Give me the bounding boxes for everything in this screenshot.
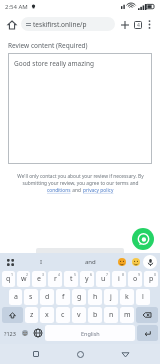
- staticText: submitting your review, you agree to our…: [22, 180, 139, 187]
- staticText: m: [124, 310, 131, 320]
- staticText: f: [62, 292, 65, 302]
- button[interactable]: Chat on WhatsApp: [132, 228, 154, 250]
- button[interactable]: Home: [5, 18, 18, 31]
- staticText: 5: [74, 272, 77, 277]
- staticText: g: [77, 292, 82, 302]
- staticText: 4: [137, 22, 140, 29]
- button[interactable]: q: [2, 271, 15, 287]
- staticText: i: [118, 274, 120, 284]
- staticText: v: [77, 310, 81, 320]
- button[interactable]: h: [88, 289, 102, 305]
- staticText: Good store really amazing: [14, 59, 94, 68]
- button[interactable]: Emoji keyboard: [18, 325, 31, 341]
- staticText: We'll only contact you about your review…: [17, 173, 144, 180]
- button[interactable]: g: [72, 289, 86, 305]
- staticText: 6: [90, 272, 93, 277]
- staticText: l: [142, 292, 144, 302]
- staticText: b: [93, 310, 98, 320]
- staticText: e: [37, 274, 41, 284]
- button[interactable]: s: [24, 289, 38, 305]
- button[interactable]: b: [88, 307, 102, 323]
- button[interactable]: More options: [144, 19, 155, 30]
- button[interactable]: Key: [2, 307, 23, 323]
- staticText: j: [110, 292, 112, 302]
- staticText: z: [30, 310, 34, 320]
- staticText: 8: [122, 272, 125, 277]
- staticText: 2: [26, 272, 29, 277]
- button[interactable]: Recent apps: [27, 345, 45, 363]
- staticText: conditions: [47, 187, 71, 194]
- button[interactable]: and: [66, 253, 115, 270]
- button[interactable]: Emoji: [129, 255, 143, 269]
- button[interactable]: Apps: [3, 255, 17, 269]
- button[interactable]: r: [48, 271, 62, 287]
- staticText: n: [109, 310, 114, 320]
- staticText: English: [81, 330, 100, 337]
- button[interactable]: f: [56, 289, 70, 305]
- button[interactable]: New tab: [118, 18, 131, 31]
- staticText: 7: [106, 272, 109, 277]
- button[interactable]: i: [112, 271, 126, 287]
- button[interactable]: Key: [136, 307, 158, 323]
- button[interactable]: English: [45, 325, 135, 341]
- button[interactable]: Good store really amazing: [8, 53, 152, 164]
- button[interactable]: x: [40, 307, 54, 323]
- button[interactable]: d: [40, 289, 54, 305]
- button[interactable]: u: [96, 271, 110, 287]
- staticText: 1: [11, 272, 14, 277]
- staticText: and: [71, 187, 83, 194]
- button[interactable]: o: [128, 271, 142, 287]
- staticText: w: [21, 274, 27, 284]
- button[interactable]: w: [17, 271, 30, 287]
- button[interactable]: t: [64, 271, 78, 287]
- staticText: d: [45, 292, 50, 302]
- button[interactable]: l: [136, 289, 150, 305]
- staticText: r: [54, 274, 57, 284]
- staticText: 4: [58, 272, 61, 277]
- staticText: 9: [138, 272, 141, 277]
- staticText: o: [133, 274, 138, 284]
- button[interactable]: Change language: [31, 325, 44, 341]
- staticText: and: [85, 258, 96, 266]
- button[interactable]: v: [72, 307, 86, 323]
- staticText: Review content (Required): [8, 41, 88, 50]
- staticText: h: [93, 292, 98, 302]
- staticText: k: [125, 292, 129, 302]
- button[interactable]: Enter: [137, 325, 158, 341]
- button[interactable]: k: [120, 289, 134, 305]
- staticText: 0: [154, 272, 157, 277]
- button[interactable]: n: [104, 307, 118, 323]
- button[interactable]: e: [32, 271, 46, 287]
- staticText: a: [14, 292, 18, 302]
- staticText: c: [61, 310, 65, 320]
- button[interactable]: y: [80, 271, 94, 287]
- button[interactable]: ?123: [1, 325, 18, 341]
- button[interactable]: z: [25, 307, 38, 323]
- staticText: t: [70, 274, 73, 284]
- staticText: x: [45, 310, 49, 320]
- button[interactable]: Tabs: [131, 18, 144, 31]
- button[interactable]: m: [120, 307, 134, 323]
- staticText: s: [29, 292, 33, 302]
- staticText: 2:54 AM: [5, 3, 28, 11]
- button[interactable]: teskifirst.online/p: [21, 17, 115, 31]
- button[interactable]: Emoji: [115, 255, 129, 269]
- staticText: privacy policy: [83, 187, 114, 194]
- staticText: I: [40, 258, 43, 266]
- button[interactable]: c: [56, 307, 70, 323]
- button[interactable]: Voice input: [143, 255, 157, 269]
- staticText: y: [85, 274, 89, 284]
- button[interactable]: I: [17, 253, 66, 270]
- staticText: q: [6, 274, 11, 284]
- staticText: 3: [42, 272, 45, 277]
- button[interactable]: Home: [71, 345, 89, 363]
- button[interactable]: j: [104, 289, 118, 305]
- button[interactable]: a: [9, 289, 22, 305]
- staticText: ?123: [4, 330, 16, 337]
- button[interactable]: [36, 248, 124, 257]
- staticText: teskifirst.online/p: [33, 20, 87, 29]
- staticText: p: [149, 274, 154, 284]
- button[interactable]: p: [144, 271, 158, 287]
- staticText: u: [101, 274, 106, 284]
- button[interactable]: Back: [116, 345, 134, 363]
